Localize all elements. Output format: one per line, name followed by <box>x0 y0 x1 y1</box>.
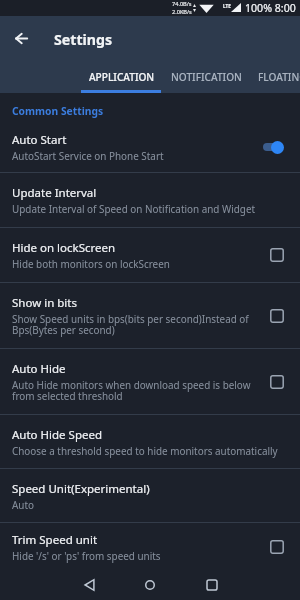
button[interactable]: Back <box>7 24 35 52</box>
button[interactable]: Home <box>135 570 165 599</box>
button[interactable]: Toggle option <box>266 244 288 266</box>
button[interactable]: Hide on lockScreen <box>0 228 300 282</box>
staticText: 74.0B/s <box>172 0 192 8</box>
button[interactable]: Toggle option <box>266 536 288 558</box>
staticText: Show Speed units in bps(bits per second)… <box>12 312 266 337</box>
staticText: Hide on lockScreen <box>12 240 116 256</box>
button[interactable]: FLOATING <box>250 63 300 90</box>
button[interactable]: Show in bits <box>0 283 300 348</box>
staticText: LTE <box>223 3 231 9</box>
button[interactable]: Recent apps <box>197 570 227 599</box>
staticText: FLOATING <box>258 70 300 84</box>
staticText: Choose a threshold speed to hide monitor… <box>12 444 278 457</box>
staticText: Hide '/s' or 'ps' from speed units <box>12 549 161 562</box>
staticText: Hide both monitors on lockScreen <box>12 257 170 270</box>
staticText: APPLICATION <box>89 70 155 84</box>
staticText: 2.0KB/s <box>172 8 192 16</box>
button[interactable]: Auto Hide Speed <box>0 415 300 468</box>
staticText: Auto Hide Speed <box>12 427 103 443</box>
button[interactable]: Toggle option <box>266 305 288 327</box>
staticText: Auto Start <box>12 132 67 148</box>
button[interactable]: Toggle option <box>266 371 288 393</box>
button[interactable]: Auto Hide <box>0 349 300 414</box>
staticText: Auto <box>12 498 34 511</box>
button[interactable]: NOTIFICATION <box>163 63 250 90</box>
staticText: 100% 8:00 <box>245 1 296 15</box>
button[interactable]: Speed Unit(Experimental) <box>0 469 300 522</box>
button[interactable]: Trim Speed unit <box>0 523 300 571</box>
staticText: Trim Speed unit <box>12 532 98 548</box>
staticText: Auto Hide monitors when download speed i… <box>12 378 266 403</box>
staticText: Update Interval <box>12 185 97 201</box>
staticText: AutoStart Service on Phone Start <box>12 149 164 162</box>
button[interactable]: Back <box>74 570 104 599</box>
staticText: Auto Hide <box>12 361 66 377</box>
staticText: Update Interval of Speed on Notification… <box>12 202 256 215</box>
button[interactable]: Auto Start toggle <box>263 138 288 156</box>
staticText: Speed Unit(Experimental) <box>12 481 150 497</box>
button[interactable]: APPLICATION <box>81 63 163 90</box>
staticText: Settings <box>54 30 113 49</box>
button[interactable]: Update Interval <box>0 173 300 227</box>
button[interactable]: Auto Start <box>0 122 300 172</box>
staticText: Show in bits <box>12 295 77 311</box>
staticText: Common Settings <box>12 104 104 118</box>
staticText: NOTIFICATION <box>171 70 242 84</box>
